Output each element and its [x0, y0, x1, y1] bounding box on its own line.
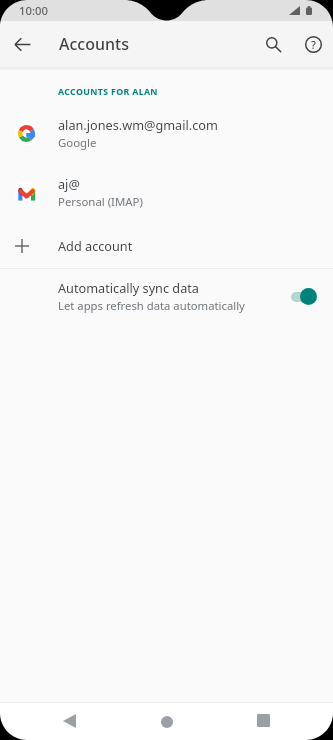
button[interactable]: Home: [147, 703, 187, 740]
staticText: Google: [58, 135, 97, 151]
button[interactable]: Automatically sync data: [0, 269, 333, 323]
staticText: 10:00: [19, 3, 48, 18]
staticText: Let apps refresh data automatically: [58, 298, 245, 313]
staticText: Automatically sync data: [58, 279, 199, 296]
staticText: ACCOUNTS FOR ALAN: [58, 86, 158, 98]
button[interactable]: Recent apps: [243, 702, 283, 739]
button[interactable]: Navigate up: [2, 24, 42, 64]
staticText: alan.jones.wm@gmail.com: [58, 116, 218, 133]
staticText: Add account: [58, 237, 133, 254]
button[interactable]: Add account: [0, 222, 333, 268]
staticText: Accounts: [59, 33, 129, 55]
staticText: Personal (IMAP): [58, 194, 143, 210]
button[interactable]: Help: [293, 24, 333, 64]
button[interactable]: Search: [253, 24, 293, 64]
staticText: aj@: [58, 175, 80, 192]
button[interactable]: alan.jones.wm@gmail.com: [0, 104, 333, 163]
button[interactable]: aj@: [0, 163, 333, 222]
button[interactable]: Back: [49, 702, 89, 739]
staticText: ?: [311, 37, 316, 52]
